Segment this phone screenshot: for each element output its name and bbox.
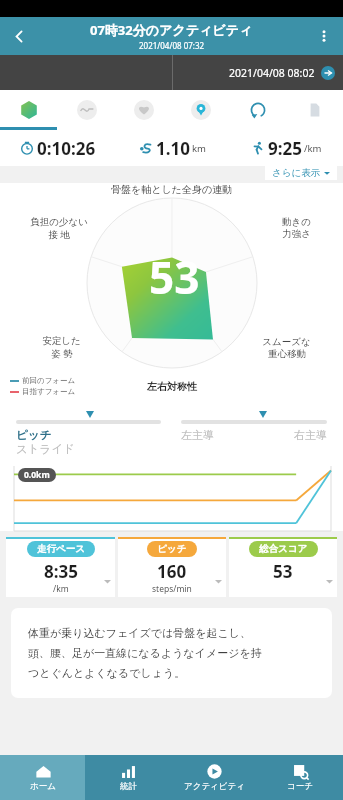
staticText: 8:35 xyxy=(44,560,78,583)
staticText: 53 xyxy=(149,247,200,307)
staticText: 右主導 xyxy=(294,428,327,442)
staticText: ホーム xyxy=(30,781,56,792)
staticText: 動きの xyxy=(282,216,311,228)
staticText: ピッチ xyxy=(16,428,52,442)
button[interactable]: さらに表示 xyxy=(272,167,330,179)
button[interactable]: Map xyxy=(172,90,229,130)
button[interactable]: Heart rate xyxy=(115,90,172,130)
button[interactable]: 総合スコア xyxy=(229,537,337,597)
staticText: 体重が乗り込むフェイズでは骨盤を起こし、 xyxy=(28,626,252,640)
button[interactable]: ホーム xyxy=(0,755,85,800)
button[interactable]: 統計 xyxy=(85,755,171,800)
staticText: アクティビティ xyxy=(184,781,245,792)
staticText: 2021/04/08 07:32 xyxy=(139,40,205,51)
button[interactable]: 2021/04/08 08:02 xyxy=(229,66,335,80)
button[interactable]: Back xyxy=(0,17,38,55)
staticText: 1.10 xyxy=(156,137,190,160)
button[interactable]: コーチ xyxy=(257,755,343,800)
staticText: 総合スコア xyxy=(259,543,308,555)
staticText: 53 xyxy=(273,560,293,583)
staticText: 0:10:26 xyxy=(37,137,96,160)
button[interactable]: 左主導 xyxy=(181,410,327,442)
staticText: steps/min xyxy=(152,583,192,595)
staticText: ピッチ xyxy=(157,543,187,555)
staticText: /km xyxy=(304,142,322,155)
staticText: スムーズな xyxy=(262,336,311,348)
staticText: km xyxy=(192,142,206,155)
staticText: 接 地 xyxy=(48,228,70,241)
staticText: 0.0km xyxy=(24,469,50,481)
staticText: 目指すフォーム xyxy=(22,387,76,396)
staticText: コーチ xyxy=(287,781,313,792)
staticText: 頭、腰、足が一直線になるようなイメージを持 xyxy=(28,646,262,660)
staticText: 姿 勢 xyxy=(51,347,73,360)
button[interactable]: More options xyxy=(305,17,343,55)
button[interactable]: Notes xyxy=(286,90,343,130)
button[interactable]: 9:25 xyxy=(229,130,343,166)
button[interactable]: 体重が乗り込むフェイズでは骨盤を起こし、 xyxy=(11,608,332,698)
staticText: 前回のフォーム xyxy=(22,376,76,385)
staticText: 左主導 xyxy=(181,428,214,442)
staticText: つとぐんとよくなるでしょう。 xyxy=(28,666,186,680)
staticText: 骨盤を軸とした全身の連動 xyxy=(111,183,233,196)
staticText: /km xyxy=(53,583,69,595)
button[interactable]: Form waveform xyxy=(58,90,115,130)
staticText: 2021/04/08 08:02 xyxy=(229,66,315,80)
button[interactable]: Overview xyxy=(0,90,58,130)
staticText: 9:25 xyxy=(268,137,302,160)
staticText: さらに表示 xyxy=(272,167,321,179)
button[interactable]: アクティビティ xyxy=(171,755,257,800)
button[interactable]: Laps xyxy=(229,90,286,130)
button[interactable]: 走行ペース xyxy=(6,537,115,597)
button[interactable]: 1.10 xyxy=(115,130,229,166)
button[interactable]: 0:10:26 xyxy=(0,130,115,166)
staticText: 07時32分のアクティビティ xyxy=(90,21,253,39)
staticText: 左右対称性 xyxy=(147,380,197,393)
staticText: 負担の少ない xyxy=(30,216,88,228)
staticText: 安定した xyxy=(42,335,81,347)
button[interactable]: ピッチ xyxy=(118,537,226,597)
staticText: 力強さ xyxy=(282,228,311,240)
staticText: 160 xyxy=(157,560,187,583)
staticText: 統計 xyxy=(120,781,137,792)
button[interactable]: ピッチ xyxy=(16,410,161,456)
staticText: 重心移動 xyxy=(268,348,306,360)
staticText: 走行ペース xyxy=(37,543,85,555)
staticText: ストライド xyxy=(16,442,75,456)
